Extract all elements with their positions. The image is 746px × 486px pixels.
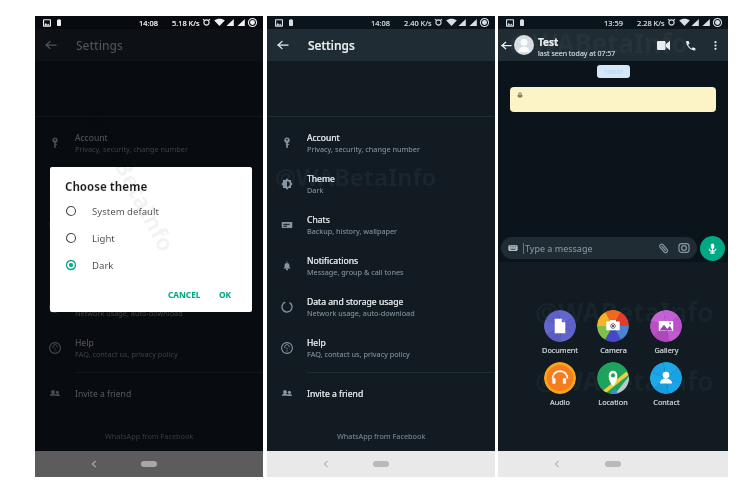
button[interactable]: Back — [317, 455, 335, 473]
button[interactable]: Location — [593, 362, 633, 407]
staticText: Test — [538, 35, 559, 49]
staticText: 2.28 K/s — [637, 18, 665, 28]
button[interactable]: Back — [85, 455, 103, 473]
staticText: Camera — [600, 345, 627, 355]
staticText: OK — [219, 289, 232, 300]
staticText: 2.40 K/s — [404, 18, 432, 28]
button[interactable]: Data and storage usage — [267, 286, 495, 327]
button[interactable]: Data and storage usage — [35, 286, 263, 327]
button[interactable]: Attach — [656, 241, 670, 255]
staticText: @WABetaInfo — [535, 363, 714, 398]
button[interactable]: Dark — [50, 252, 252, 278]
button[interactable]: Contact photo — [514, 35, 534, 55]
staticText: Settings — [76, 37, 123, 53]
button[interactable]: Help — [35, 327, 263, 368]
staticText: Chats — [307, 214, 330, 226]
button[interactable]: Account — [35, 122, 263, 163]
staticText: Contact — [653, 397, 680, 407]
button[interactable]: Notifications — [267, 245, 495, 286]
staticText: Theme — [307, 173, 335, 185]
staticText: Location — [598, 397, 628, 407]
staticText: @WABetaInfo — [275, 161, 437, 193]
staticText: Document — [542, 345, 578, 355]
staticText: Dark — [92, 259, 114, 272]
staticText: @WABetaInfo — [81, 102, 183, 257]
staticText: System default — [92, 205, 159, 218]
staticText: FAQ, contact us, privacy policy — [75, 349, 178, 359]
button[interactable]: Back — [499, 29, 514, 61]
button[interactable]: CANCEL — [164, 286, 205, 303]
button[interactable]: System default — [50, 198, 252, 224]
staticText: FAQ, contact us, privacy policy — [307, 349, 410, 359]
button[interactable]: Help — [267, 327, 495, 368]
staticText: Data and storage usage — [307, 296, 404, 308]
staticText: Settings — [308, 37, 355, 53]
button[interactable]: Back — [35, 29, 66, 61]
staticText: Message, group & call tones — [75, 267, 172, 277]
staticText: Backup, history, wallpaper — [75, 226, 166, 236]
staticText: 5.18 K/s — [172, 18, 200, 28]
staticText: Backup, history, wallpaper — [307, 226, 398, 236]
button[interactable]: More options — [707, 29, 723, 61]
staticText: Privacy, security, change number — [307, 144, 420, 154]
staticText: Privacy, security, change number — [75, 144, 188, 154]
staticText: Light — [92, 232, 115, 245]
button[interactable]: Audio — [540, 362, 580, 407]
staticText: WhatsApp from Facebook — [105, 431, 194, 441]
button[interactable]: Voice message — [700, 236, 725, 261]
button[interactable]: Voice call — [681, 29, 699, 61]
button[interactable]: Document — [540, 310, 580, 355]
button[interactable]: Camera — [593, 310, 633, 355]
staticText: Network usage, auto-download — [307, 308, 415, 318]
staticText: Dark — [307, 185, 324, 195]
staticText: Audio — [550, 397, 570, 407]
button[interactable]: OK — [215, 286, 236, 303]
staticText: Notifications — [307, 255, 359, 267]
staticText: Data and storage usage — [75, 296, 172, 308]
staticText: Choose theme — [65, 179, 148, 195]
button[interactable]: Home — [141, 461, 157, 467]
staticText: Invite a friend — [307, 388, 364, 400]
staticText: Theme — [75, 173, 103, 185]
staticText: Dark — [75, 185, 92, 195]
button[interactable]: Theme — [35, 163, 263, 204]
staticText: @WABetaInfo — [509, 25, 688, 57]
staticText: Invite a friend — [75, 388, 132, 400]
staticText: Message, group & call tones — [307, 267, 404, 277]
button[interactable]: Back — [267, 29, 298, 61]
staticText: 14:08 — [139, 18, 158, 28]
staticText: Help — [307, 337, 326, 349]
staticText: WhatsApp from Facebook — [337, 431, 426, 441]
button[interactable]: Home — [373, 461, 389, 467]
button[interactable]: Notifications — [35, 245, 263, 286]
staticText: Gallery — [654, 345, 679, 355]
button[interactable]: Account — [267, 122, 495, 163]
staticText: Help — [75, 337, 94, 349]
button[interactable]: Camera — [677, 241, 691, 255]
staticText: @WABetaInfo — [535, 294, 714, 329]
staticText: Account — [75, 132, 108, 144]
staticText: Network usage, auto-download — [75, 308, 183, 318]
staticText: Notifications — [75, 255, 127, 267]
staticText: 14:08 — [371, 18, 390, 28]
button[interactable]: Invite a friend — [35, 373, 263, 414]
button[interactable]: Light — [50, 225, 252, 251]
button[interactable]: Type a message — [501, 237, 697, 259]
staticText: last seen today at 07:57 — [538, 49, 616, 59]
button[interactable]: Invite a friend — [267, 373, 495, 414]
button[interactable]: Contact — [646, 362, 686, 407]
staticText: Chats — [75, 214, 98, 226]
button[interactable]: Video call — [654, 29, 672, 61]
staticText: 13:59 — [604, 18, 623, 28]
button[interactable]: Home — [605, 461, 621, 467]
button[interactable]: Chats — [267, 204, 495, 245]
button[interactable]: Theme — [267, 163, 495, 204]
button[interactable]: Gallery — [646, 310, 686, 355]
staticText: Account — [307, 132, 340, 144]
button[interactable]: Back — [548, 455, 566, 473]
staticText: Type a message — [525, 242, 593, 254]
staticText: TODAY — [604, 68, 624, 76]
button[interactable]: Chats — [35, 204, 263, 245]
staticText: CANCEL — [168, 289, 201, 300]
